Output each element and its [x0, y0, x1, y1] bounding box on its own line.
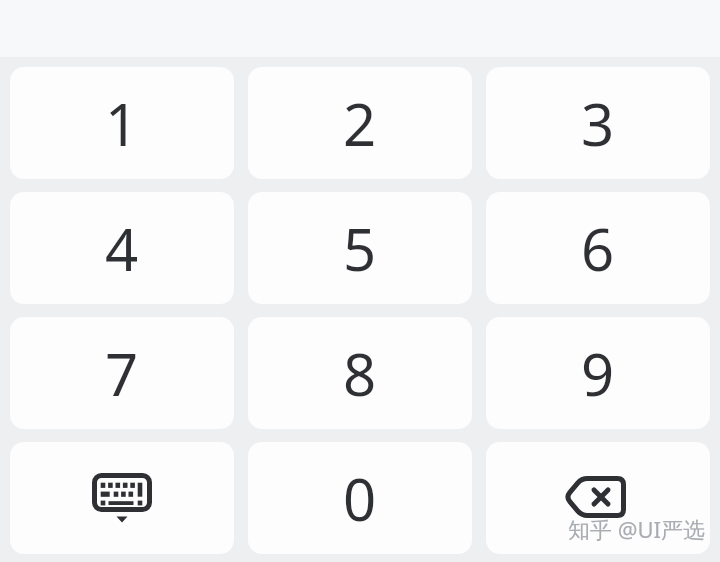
staticText: 1: [105, 84, 139, 163]
button[interactable]: [10, 442, 234, 554]
staticText: 0: [343, 459, 377, 538]
button[interactable]: 2: [248, 67, 472, 179]
button[interactable]: 7: [10, 317, 234, 429]
button[interactable]: 3: [486, 67, 710, 179]
staticText: 6: [581, 209, 615, 288]
button[interactable]: 5: [248, 192, 472, 304]
staticText: 2: [343, 84, 377, 163]
button[interactable]: [486, 442, 710, 554]
button[interactable]: 4: [10, 192, 234, 304]
staticText: 3: [581, 84, 615, 163]
staticText: 9: [581, 334, 615, 413]
staticText: 8: [343, 334, 377, 413]
button[interactable]: 8: [248, 317, 472, 429]
button[interactable]: 9: [486, 317, 710, 429]
staticText: 知乎 @UI严选: [568, 514, 706, 544]
button[interactable]: 6: [486, 192, 710, 304]
button[interactable]: 0: [248, 442, 472, 554]
staticText: 4: [105, 209, 139, 288]
staticText: 7: [105, 334, 139, 413]
button[interactable]: 1: [10, 67, 234, 179]
staticText: 5: [343, 209, 377, 288]
